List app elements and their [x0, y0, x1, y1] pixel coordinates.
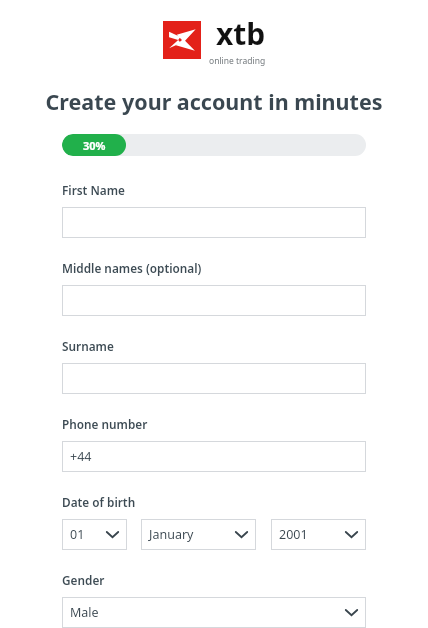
staticText: Create your account in minutes — [45, 87, 383, 116]
staticText: online trading — [209, 55, 266, 67]
button[interactable]: Select year — [271, 519, 366, 550]
staticText: Phone number — [62, 416, 148, 432]
button[interactable]: Select day — [62, 519, 127, 550]
staticText: 01 — [70, 526, 85, 543]
staticText: Gender — [62, 572, 105, 588]
button[interactable]: +44 — [62, 441, 366, 472]
staticText: Male — [70, 604, 99, 621]
staticText: +44 — [70, 448, 92, 465]
staticText: Date of birth — [62, 494, 136, 510]
button[interactable]: Select month — [141, 519, 256, 550]
button[interactable] — [62, 363, 366, 394]
button[interactable]: Select gender — [62, 597, 366, 628]
staticText: First Name — [62, 182, 125, 198]
button[interactable] — [62, 285, 366, 316]
staticText: January — [149, 526, 194, 543]
staticText: 2001 — [279, 526, 308, 543]
button[interactable] — [62, 207, 366, 238]
staticText: Middle names (optional) — [62, 260, 202, 276]
staticText: Surname — [62, 338, 114, 354]
staticText: 30% — [83, 138, 106, 153]
staticText: xtb — [216, 13, 266, 54]
